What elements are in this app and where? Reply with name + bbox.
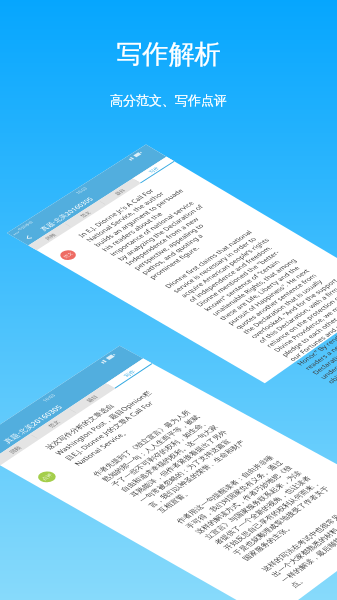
button[interactable] [0,0,337,600]
